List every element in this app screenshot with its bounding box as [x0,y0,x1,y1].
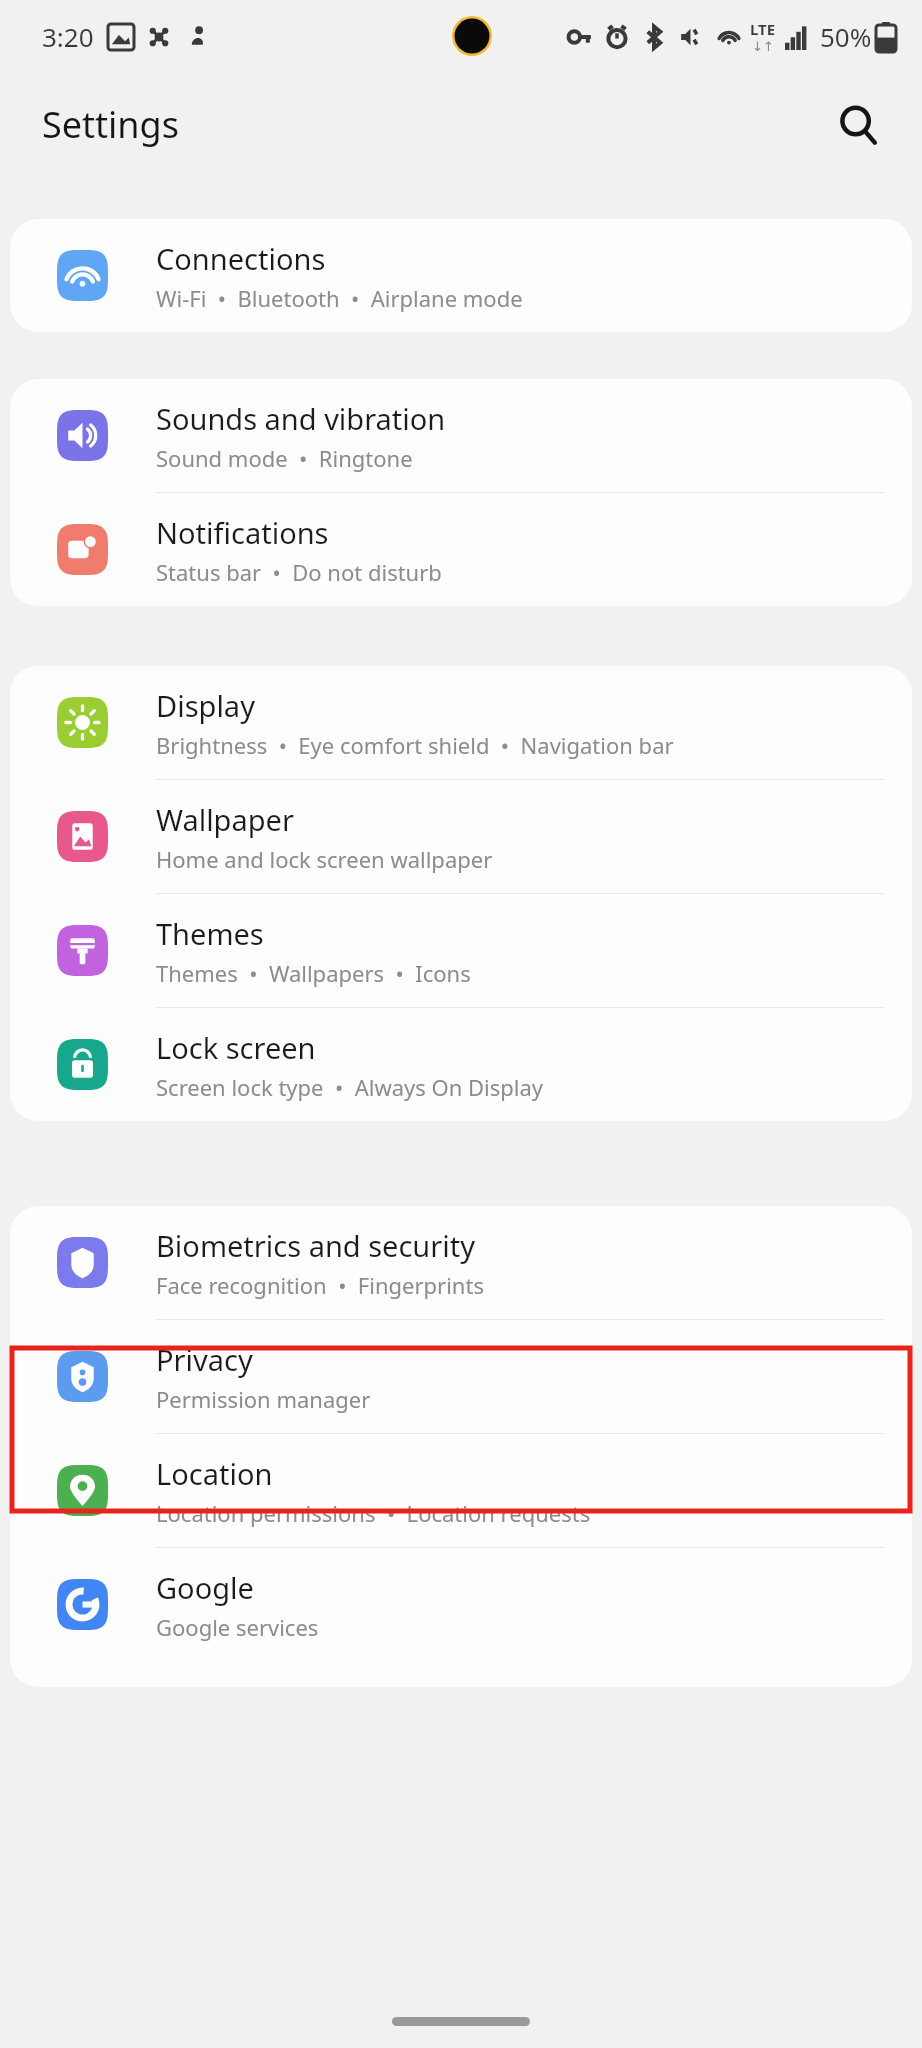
button[interactable]: Wallpaper [10,780,912,893]
staticText: Themes [156,914,264,953]
staticText: Lock screen [156,1028,316,1067]
staticText: Location permissions • Location requests [156,1498,591,1528]
staticText: Google services [156,1612,319,1642]
button[interactable]: Connections [10,219,912,332]
staticText: Wi-Fi • Bluetooth • Airplane mode [156,283,523,313]
staticText: Google [156,1568,254,1607]
staticText: Connections [156,239,326,278]
button[interactable]: Biometrics and security [10,1206,912,1319]
button[interactable]: Notifications [10,493,912,606]
staticText: Display [156,686,255,725]
button[interactable]: Privacy [10,1320,912,1433]
staticText: Home and lock screen wallpaper [156,844,493,874]
button[interactable]: Lock screen [10,1008,912,1121]
staticText: 3:20 [42,19,94,54]
staticText: Status bar • Do not disturb [156,557,442,587]
staticText: Wallpaper [156,800,294,839]
staticText: Settings [42,100,179,149]
staticText: Notifications [156,513,329,552]
staticText: Sound mode • Ringtone [156,443,413,473]
staticText: Brightness • Eye comfort shield • Naviga… [156,730,674,760]
staticText: Screen lock type • Always On Display [156,1072,544,1102]
staticText: Biometrics and security [156,1226,476,1265]
staticText: 50% [820,19,872,54]
staticText: Permission manager [156,1384,371,1414]
staticText: ↓↑ [752,39,774,54]
staticText: Themes • Wallpapers • Icons [156,958,471,988]
button[interactable]: Location [10,1434,912,1547]
staticText: Face recognition • Fingerprints [156,1270,484,1300]
button[interactable]: Display [10,666,912,779]
staticText: Location [156,1454,273,1493]
button[interactable]: Themes [10,894,912,1007]
button[interactable]: Sounds and vibration [10,379,912,492]
staticText: Sounds and vibration [156,399,446,438]
staticText: Privacy [156,1340,253,1379]
staticText: LTE [750,19,776,39]
button[interactable]: Search [830,97,886,153]
button[interactable]: Google [10,1548,912,1661]
